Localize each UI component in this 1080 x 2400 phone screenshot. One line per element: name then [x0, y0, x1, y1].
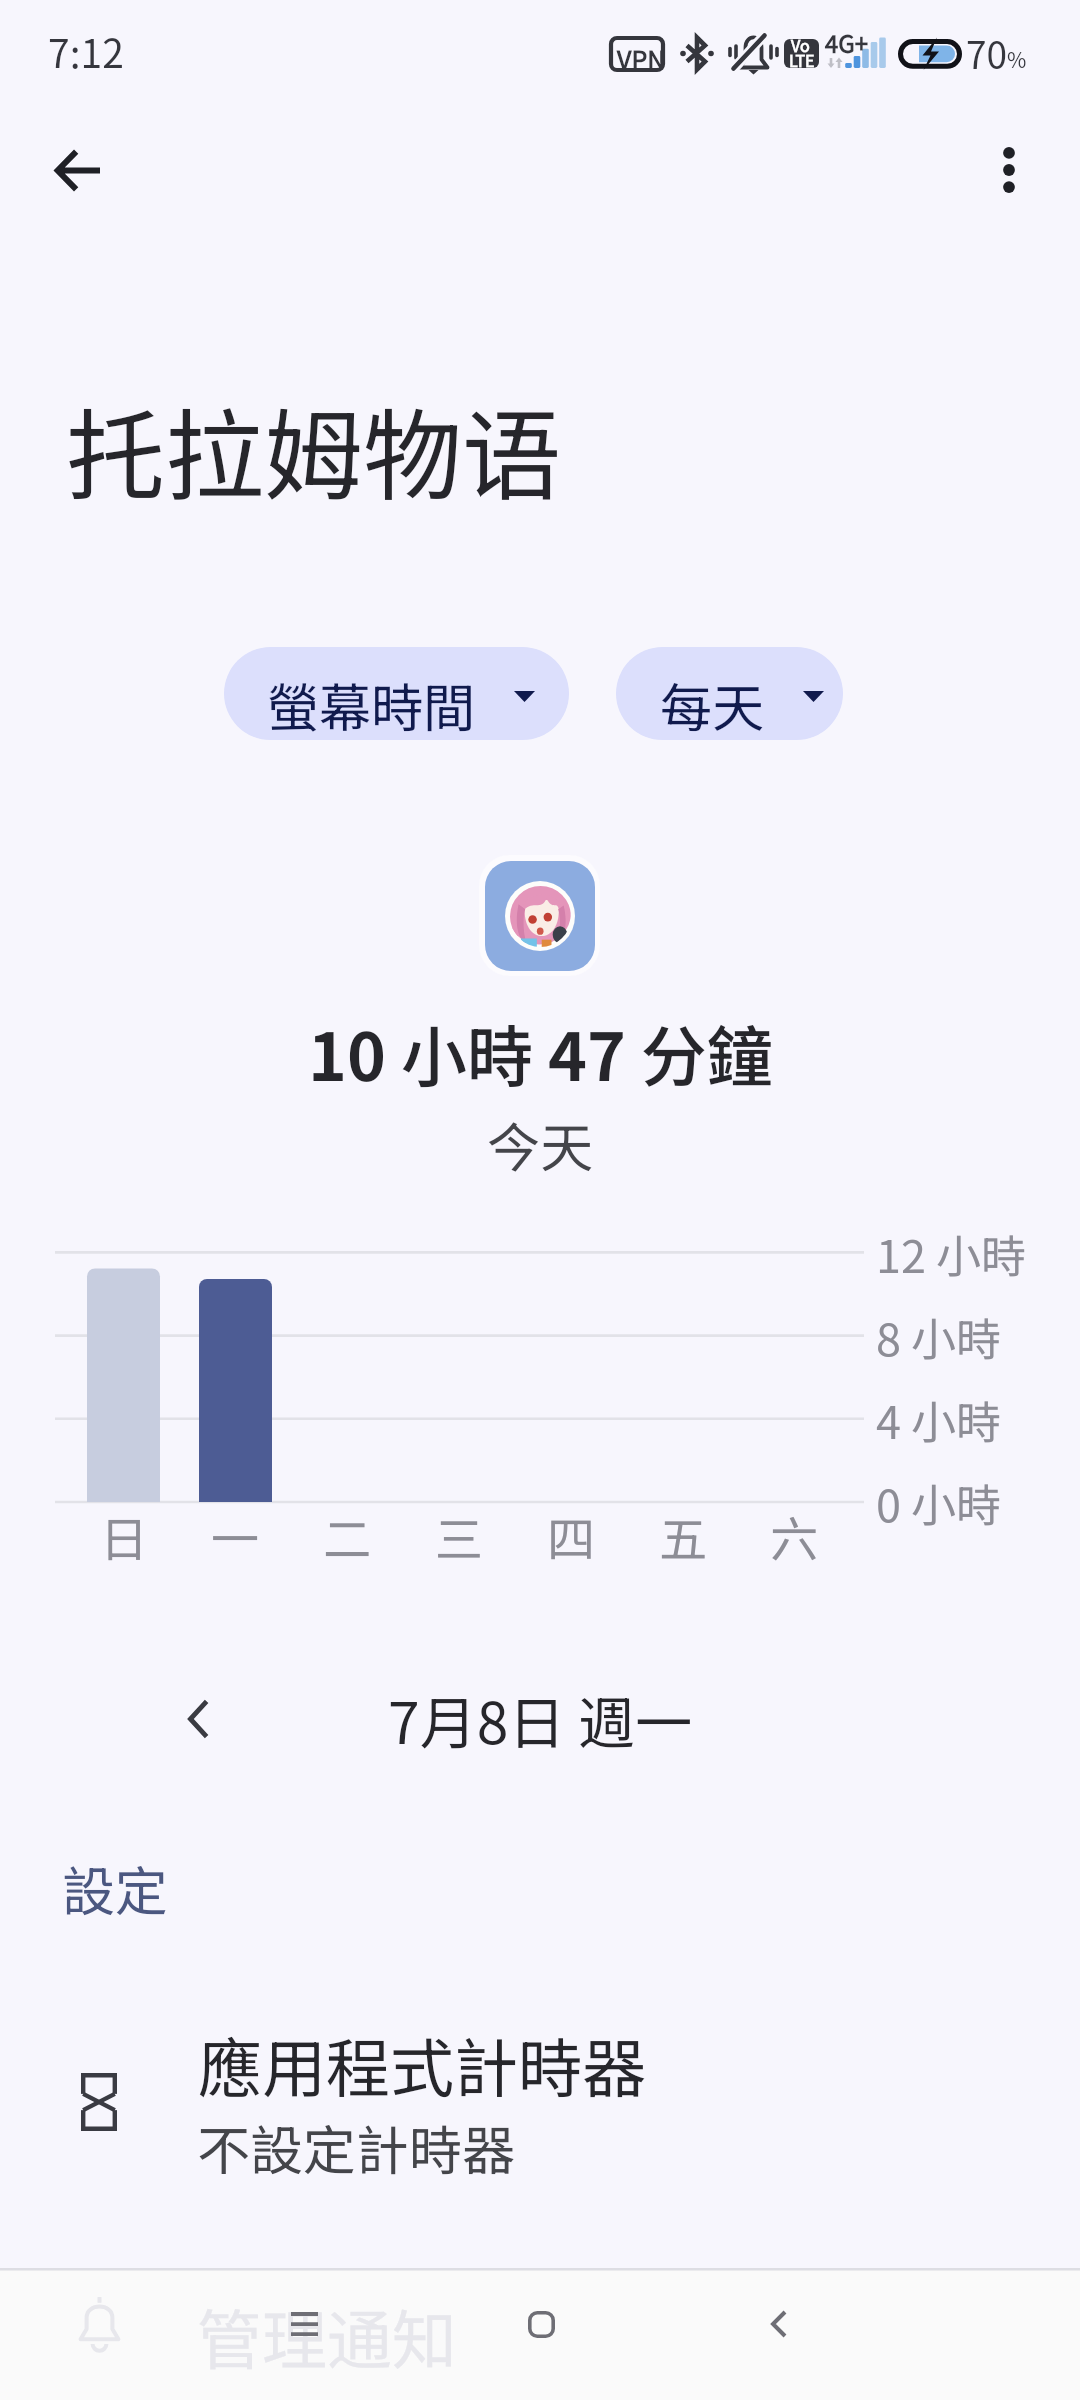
staticText: 應用程式計時器 [198, 2018, 646, 2111]
staticText: VPN [617, 40, 666, 76]
staticText: 三 [435, 1501, 484, 1567]
staticText: 螢幕時間 [267, 667, 476, 740]
staticText: 7:12 [48, 23, 124, 79]
staticText: 10 [308, 1004, 386, 1100]
staticText: 四 [547, 1501, 596, 1567]
staticText: 二 [323, 1501, 372, 1567]
staticText: 4 小時 [876, 1387, 1002, 1452]
staticText: 70 [966, 26, 1008, 80]
staticText: % [1007, 44, 1027, 74]
staticText: 一 [211, 1501, 260, 1567]
button[interactable]: 螢幕時間 [224, 647, 569, 740]
staticText: Vo [791, 33, 810, 56]
button[interactable]: Menu [256, 2276, 352, 2372]
staticText: 0 小時 [876, 1470, 1002, 1535]
staticText: 每天 [660, 667, 765, 740]
staticText: 設定 [62, 1850, 168, 1927]
button[interactable]: More options [961, 122, 1057, 218]
staticText: 托拉姆物语 [66, 377, 561, 520]
staticText: 7月8日 週一 [388, 1678, 693, 1761]
button[interactable]: Previous day [150, 1671, 246, 1767]
button[interactable]: 應用程式計時器 [0, 1985, 1080, 2215]
staticText: 小時 [386, 1004, 548, 1100]
button[interactable]: Recent apps [493, 2276, 589, 2372]
staticText: 不設定計時器 [197, 2109, 515, 2186]
staticText: LTE [789, 48, 815, 71]
staticText: 六 [770, 1501, 819, 1567]
staticText: 管理通知 [197, 2289, 458, 2383]
button[interactable]: 每天 [616, 647, 843, 740]
staticText: 日 [100, 1501, 149, 1567]
button[interactable]: Back [29, 122, 125, 218]
staticText: 12 小時 [876, 1221, 1027, 1286]
staticText: 4G+ [825, 25, 869, 60]
staticText: 8 小時 [876, 1304, 1002, 1369]
staticText: 分鐘 [626, 1004, 773, 1100]
staticText: 47 [548, 1004, 626, 1100]
button[interactable]: Back [731, 2276, 827, 2372]
staticText: 五 [659, 1501, 708, 1567]
staticText: 今天 [487, 1106, 593, 1183]
